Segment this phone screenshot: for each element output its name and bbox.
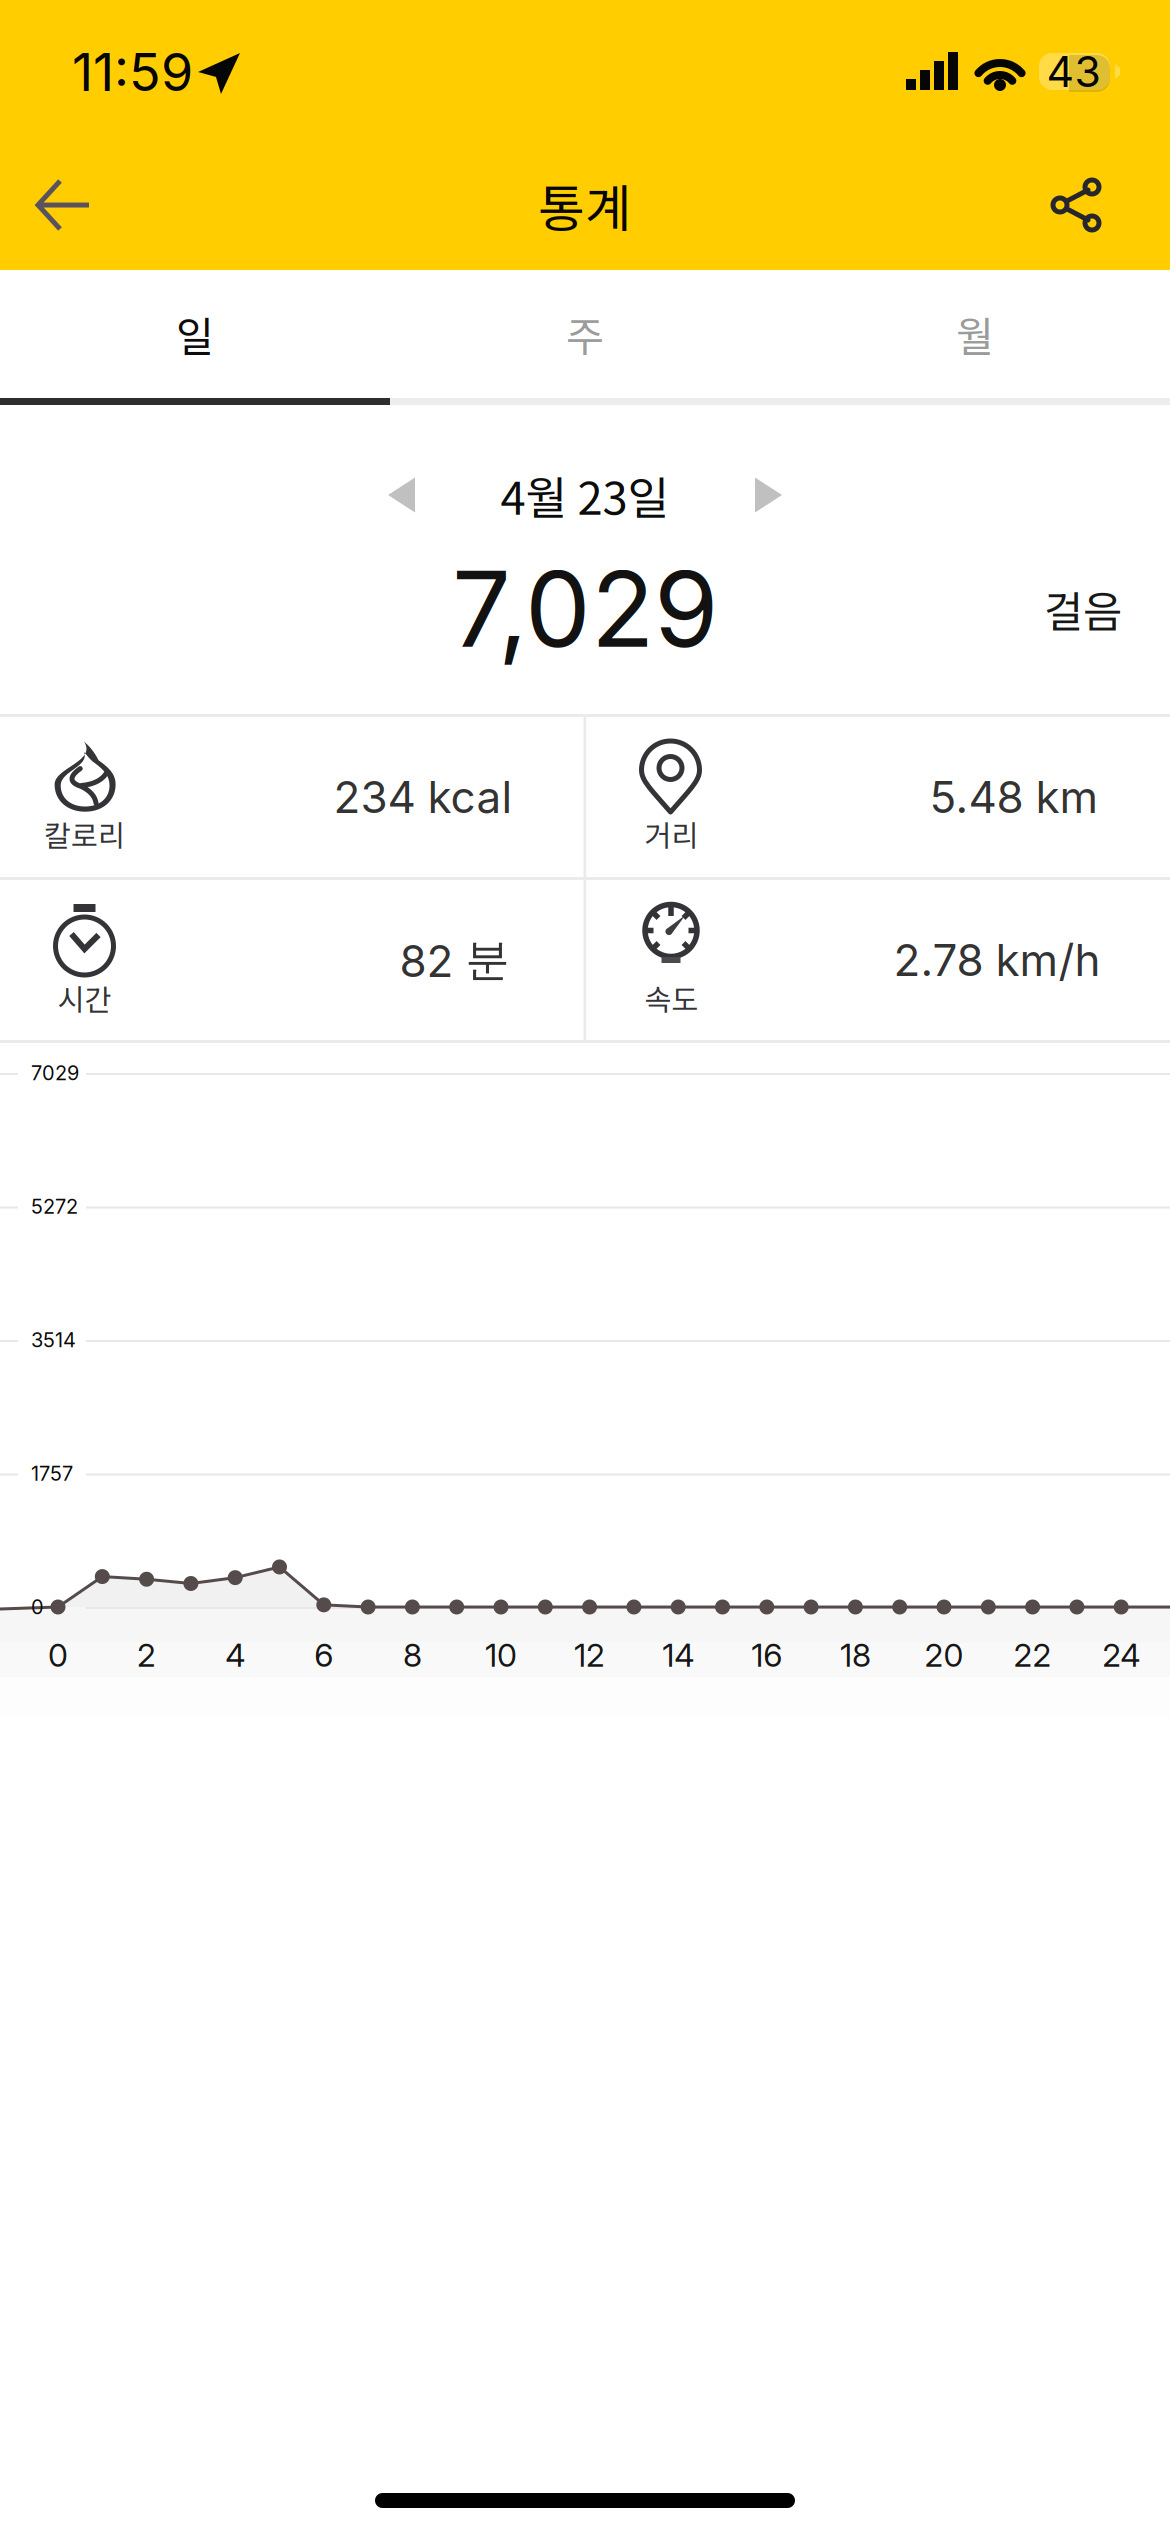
staticText: 7,029 [452, 546, 718, 672]
staticText: 1757 [31, 1461, 73, 1486]
staticText: 82 분 [399, 932, 509, 988]
staticText: 24 [1102, 1636, 1140, 1674]
button[interactable]: 일 [0, 270, 390, 398]
staticText: 22 [1014, 1636, 1052, 1674]
staticText: 걸음 [1044, 578, 1122, 640]
staticText: 2 [137, 1636, 156, 1674]
staticText: 3514 [31, 1328, 76, 1352]
staticText: 14 [662, 1636, 694, 1674]
staticText: 234 kcal [333, 770, 512, 824]
staticText: 0 [48, 1636, 68, 1674]
button[interactable]: Next day [720, 449, 816, 541]
button[interactable]: Share [1021, 150, 1131, 260]
staticText: 4 [225, 1636, 245, 1674]
staticText: 12 [574, 1636, 605, 1674]
staticText: 시간 [57, 977, 111, 1019]
staticText: 5.48 km [929, 770, 1098, 824]
staticText: 월 [956, 304, 994, 364]
staticText: 11:59 [72, 40, 193, 103]
button[interactable]: 주 [390, 270, 780, 398]
staticText: 18 [840, 1636, 871, 1674]
button[interactable]: Back [9, 150, 119, 260]
staticText: 43 [1046, 46, 1100, 97]
staticText: 6 [314, 1636, 333, 1674]
staticText: 4월 23일 [500, 462, 669, 528]
staticText: 거리 [644, 813, 698, 855]
staticText: 0 [31, 1595, 44, 1619]
staticText: 2.78 km/h [893, 933, 1100, 987]
staticText: 10 [485, 1636, 517, 1674]
staticText: 5272 [31, 1194, 78, 1219]
staticText: 통계 [538, 168, 632, 242]
staticText: 20 [924, 1636, 963, 1674]
staticText: 칼로리 [44, 813, 125, 855]
button[interactable]: Previous day [354, 449, 450, 541]
staticText: 주 [566, 304, 604, 364]
staticText: 16 [751, 1636, 782, 1674]
staticText: 일 [176, 304, 214, 364]
staticText: 속도 [644, 977, 698, 1019]
staticText: 8 [403, 1636, 422, 1674]
button[interactable]: 월 [780, 270, 1170, 398]
staticText: 7029 [31, 1061, 79, 1085]
